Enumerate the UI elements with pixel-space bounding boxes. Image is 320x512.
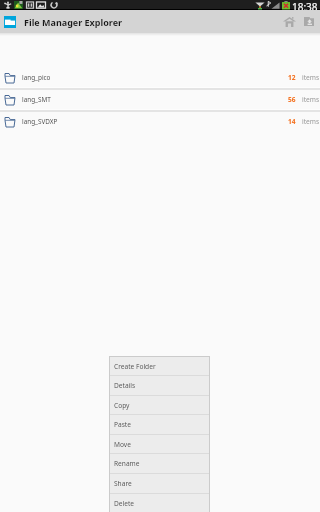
staticText: items xyxy=(302,117,320,126)
staticText: Copy xyxy=(114,401,130,410)
staticText: Delete xyxy=(114,499,135,508)
button[interactable]: lang_pico xyxy=(0,68,320,87)
staticText: Move xyxy=(114,440,131,449)
staticText: lang_SVDXP xyxy=(22,117,58,126)
button[interactable]: Paste xyxy=(110,415,209,434)
staticText: Create Folder xyxy=(114,362,156,371)
staticText: File Manager Explorer xyxy=(24,16,123,28)
button[interactable]: Move xyxy=(110,435,209,453)
staticText: 56 xyxy=(288,95,296,104)
staticText: Paste xyxy=(114,420,131,429)
button[interactable]: Rename xyxy=(110,454,209,473)
staticText: items xyxy=(302,95,320,104)
staticText: Share xyxy=(114,479,132,488)
button[interactable]: lang_SMT xyxy=(0,90,320,109)
staticText: lang_SMT xyxy=(22,95,51,104)
button[interactable]: Share xyxy=(110,474,209,493)
staticText: items xyxy=(302,73,320,82)
staticText: Details xyxy=(114,381,136,390)
staticText: lang_pico xyxy=(22,73,51,82)
staticText: 18:38 xyxy=(292,0,318,10)
staticText: Rename xyxy=(114,459,140,468)
button[interactable]: lang_SVDXP xyxy=(0,112,320,131)
button[interactable]: Create Folder xyxy=(110,357,209,375)
staticText: 12 xyxy=(288,73,296,82)
button[interactable]: Home xyxy=(280,10,299,33)
button[interactable]: Up one level xyxy=(301,10,317,33)
button[interactable]: Delete xyxy=(110,494,209,512)
button[interactable]: Details xyxy=(110,376,209,395)
staticText: 14 xyxy=(288,117,296,126)
button[interactable]: Copy xyxy=(110,396,209,414)
